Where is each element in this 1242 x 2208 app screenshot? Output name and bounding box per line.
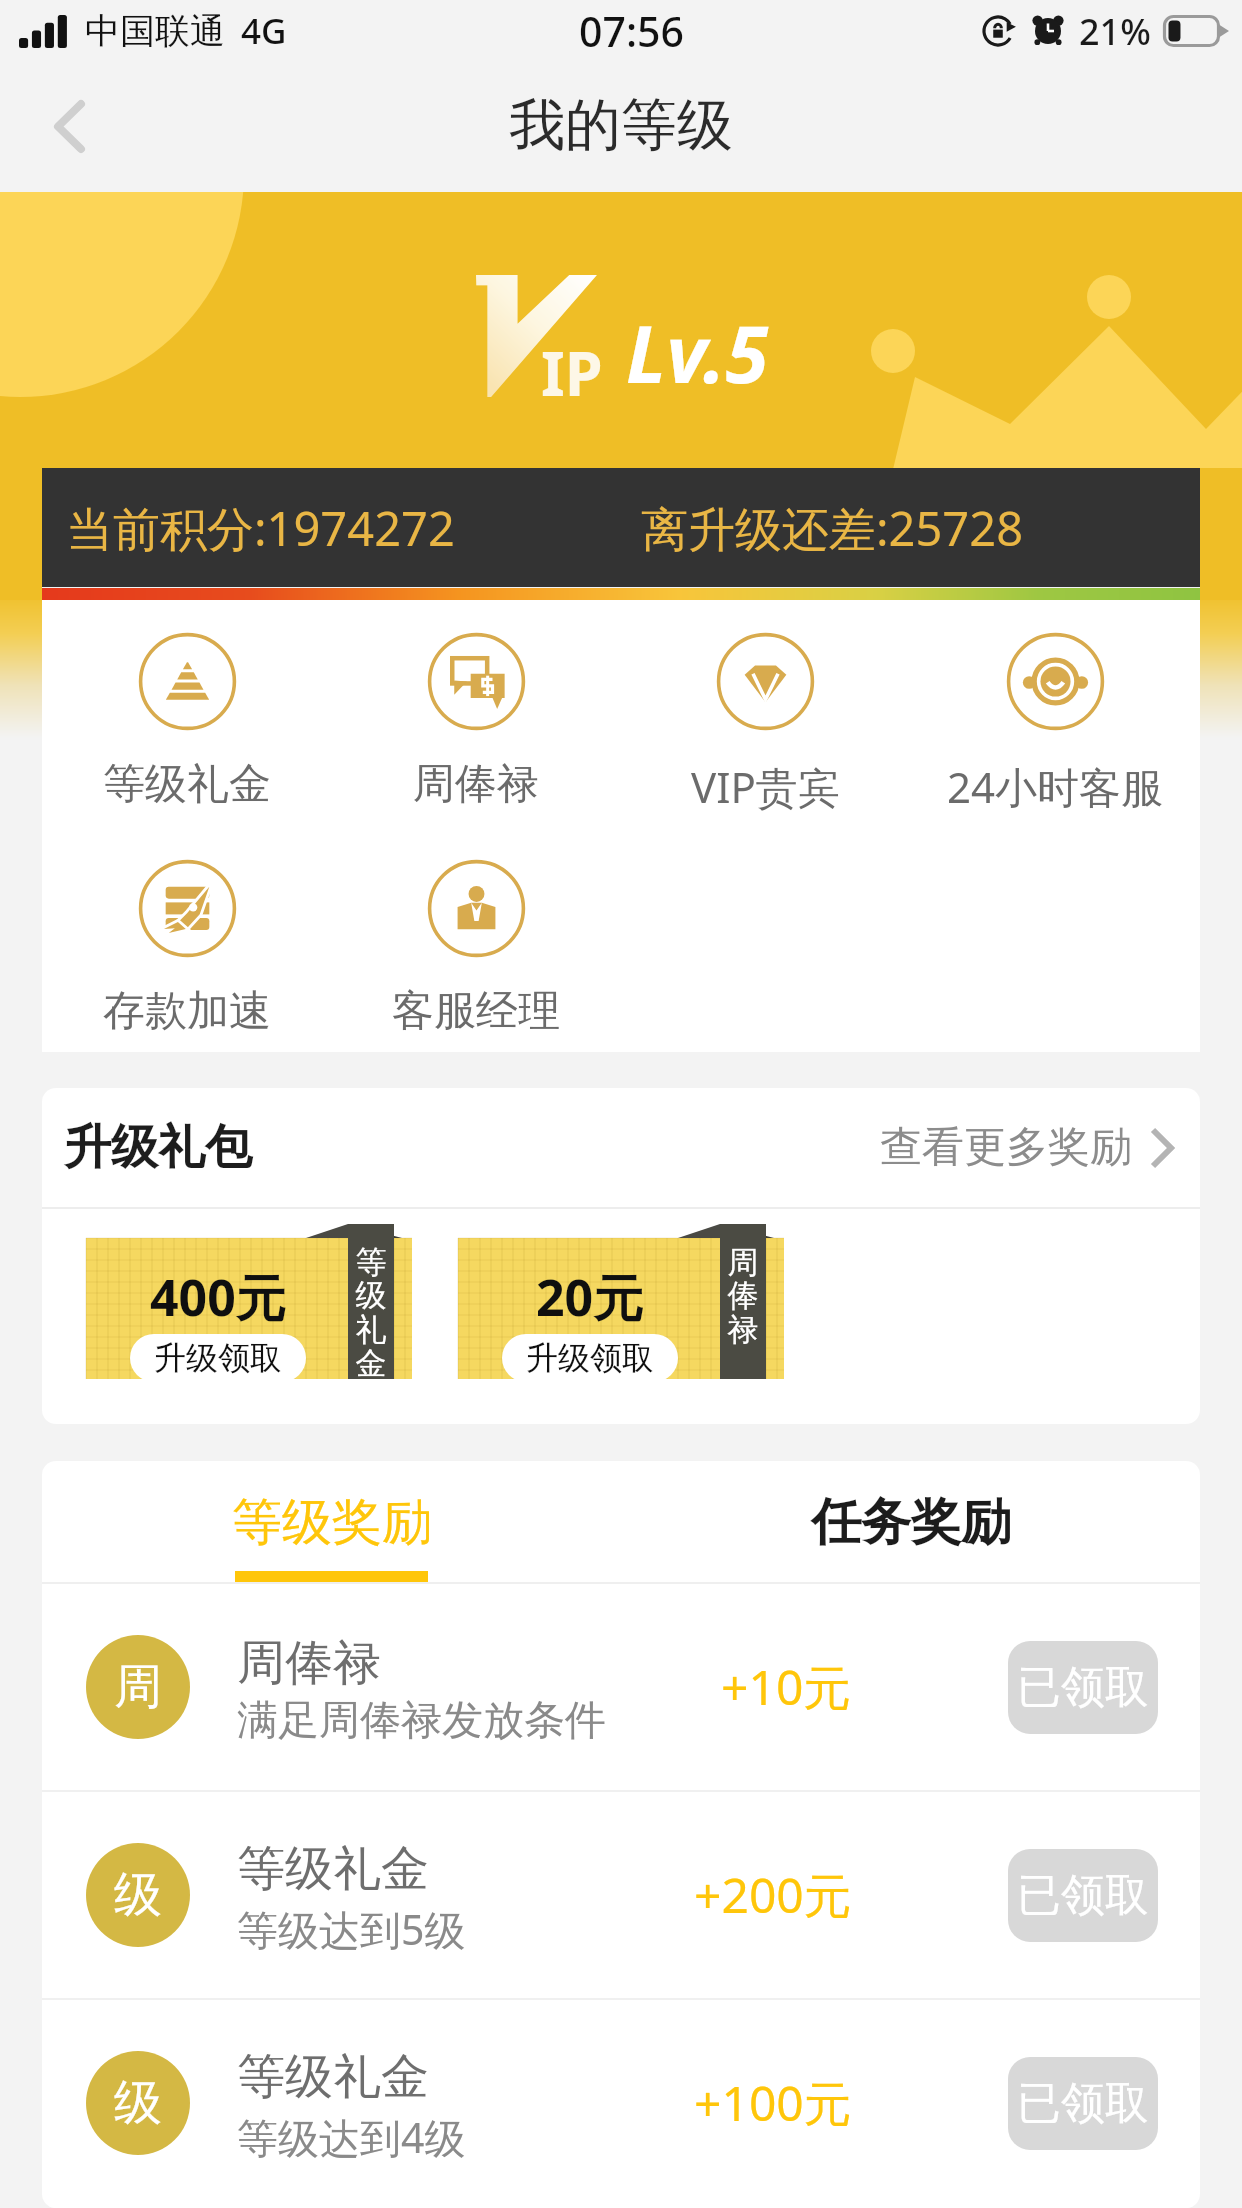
staticText: 级 — [114, 2073, 162, 2133]
staticText: 我的等级 — [509, 90, 733, 161]
staticText: 升级领取 — [154, 1338, 282, 1378]
button[interactable]: 等 级 礼 金 — [86, 1224, 412, 1379]
button[interactable]: 周 俸 禄 — [458, 1224, 784, 1379]
staticText: 离升级还差:25728 — [641, 496, 1024, 560]
staticText: 周俸禄 — [237, 1633, 381, 1693]
button[interactable]: 周 — [86, 1584, 1158, 1790]
staticText: 07:56 — [579, 3, 684, 59]
button[interactable]: VIP贵宾 — [691, 633, 840, 815]
staticText: 等级奖励 — [232, 1491, 432, 1554]
staticText: 等级礼金 — [103, 758, 271, 811]
staticText: +100元 — [694, 2070, 852, 2136]
staticText: VIP贵宾 — [691, 758, 840, 815]
button[interactable]: 等级礼金 — [103, 633, 271, 811]
staticText: 客服经理 — [392, 985, 560, 1038]
staticText: 等级礼金 — [237, 1839, 429, 1899]
button[interactable]: 升级礼包 — [64, 1088, 1174, 1207]
button[interactable]: 级 — [86, 2000, 1158, 2206]
button[interactable]: 任务奖励 — [621, 1461, 1200, 1582]
button[interactable]: 24小时客服 — [947, 633, 1164, 815]
staticText: 周 — [114, 1657, 162, 1717]
staticText: 级 — [114, 1865, 162, 1925]
button[interactable]: 级 — [86, 1792, 1158, 1998]
button[interactable]: 存款加速 — [103, 860, 271, 1038]
staticText: 查看更多奖励 — [880, 1121, 1132, 1174]
staticText: 等级达到4级 — [237, 2109, 466, 2165]
button[interactable]: Back — [23, 80, 115, 172]
staticText: 升级礼包 — [64, 1118, 252, 1177]
staticText: 已领取 — [1017, 1868, 1149, 1923]
button[interactable]: 已领取 — [1008, 1641, 1158, 1734]
staticText: 400元 — [150, 1263, 286, 1331]
button[interactable]: 已领取 — [1008, 1849, 1158, 1942]
staticText: +200元 — [694, 1862, 852, 1928]
staticText: 24小时客服 — [947, 758, 1164, 815]
button[interactable]: 周俸禄 — [413, 633, 539, 811]
staticText: 4G — [241, 7, 287, 55]
staticText: 中国联通 — [85, 9, 225, 53]
staticText: Lv.5 — [626, 300, 769, 406]
button[interactable]: 已领取 — [1008, 2057, 1158, 2150]
staticText: 升级领取 — [526, 1338, 654, 1378]
staticText: IP — [541, 331, 603, 414]
staticText: 21% — [1079, 7, 1151, 56]
staticText: 任务奖励 — [811, 1491, 1011, 1554]
staticText: 已领取 — [1017, 2076, 1149, 2131]
staticText: 已领取 — [1017, 1660, 1149, 1715]
staticText: 等级达到5级 — [237, 1901, 466, 1957]
staticText: 满足周俸禄发放条件 — [237, 1695, 606, 1747]
staticText: 20元 — [536, 1263, 644, 1331]
staticText: 周 俸 禄 — [721, 1243, 765, 1350]
staticText: 周俸禄 — [413, 758, 539, 811]
button[interactable]: 等级奖励 — [42, 1461, 621, 1582]
staticText: 当前积分:1974272 — [66, 496, 455, 560]
staticText: 存款加速 — [103, 985, 271, 1038]
staticText: +10元 — [721, 1654, 852, 1720]
staticText: 等 级 礼 金 — [349, 1243, 393, 1384]
button[interactable]: 客服经理 — [392, 860, 560, 1038]
staticText: 等级礼金 — [237, 2047, 429, 2107]
